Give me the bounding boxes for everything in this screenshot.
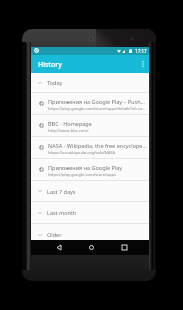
staticText: 17:17 <box>135 48 147 54</box>
staticText: Приложения на Google Play – Push… <box>48 98 145 105</box>
staticText: https://en.wikipedia.org/wiki/NASA <box>48 150 116 156</box>
button[interactable]: Last 7 days <box>31 181 149 201</box>
button[interactable]: Today <box>31 73 149 92</box>
staticText: History <box>38 60 62 69</box>
button[interactable]: Recent apps <box>117 240 131 255</box>
staticText: http://www.bbc.com/ <box>48 128 89 134</box>
staticText: NASA - Wikipedia, the free encyclope… <box>48 142 147 149</box>
button[interactable]: Back <box>52 240 66 255</box>
staticText: Last 7 days <box>47 188 76 195</box>
button[interactable]: Приложения на Google Play – Push… <box>31 93 149 114</box>
staticText: BBC - Homepage <box>48 120 92 127</box>
button[interactable]: Older <box>31 224 149 245</box>
staticText: Today <box>47 79 63 86</box>
button[interactable]: Приложения на Google Play <box>31 159 149 180</box>
button[interactable]: NASA - Wikipedia, the free encyclope… <box>31 137 149 158</box>
staticText: Last month <box>47 209 77 216</box>
staticText: Older <box>47 231 62 238</box>
button[interactable]: BBC - Homepage <box>31 115 149 136</box>
button[interactable]: More options <box>136 55 149 73</box>
staticText: https://play.google.com/store/apps <box>48 172 116 178</box>
button[interactable]: Home <box>84 240 98 255</box>
button[interactable]: Last month <box>31 202 149 223</box>
staticText: https://play.google.com/store/apps/detai… <box>48 106 148 112</box>
staticText: Приложения на Google Play <box>48 164 123 171</box>
